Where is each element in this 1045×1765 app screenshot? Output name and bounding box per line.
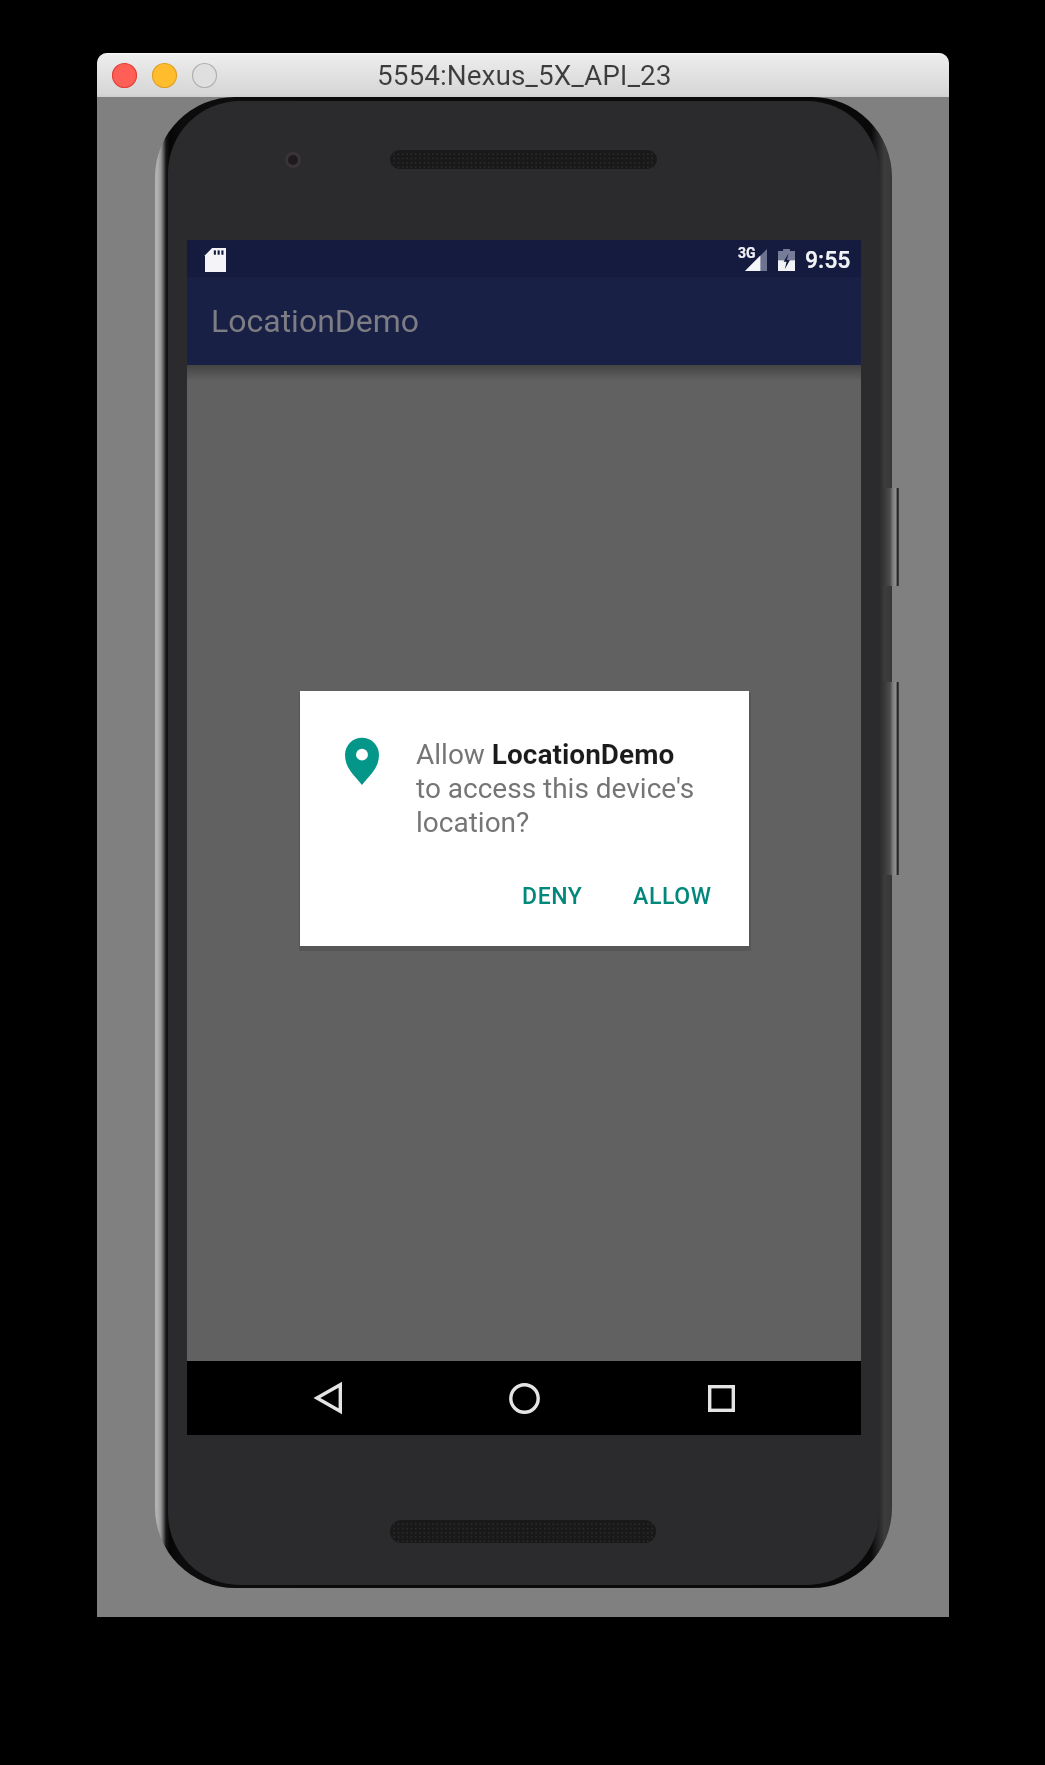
staticText: 3G: [738, 245, 756, 261]
button[interactable]: Back: [272, 1361, 384, 1435]
staticText: LocationDemo: [211, 302, 420, 340]
staticText: 9:55: [805, 247, 851, 274]
staticText: Allow LocationDemo to access this device…: [416, 738, 695, 839]
button[interactable]: Recent apps: [665, 1361, 777, 1435]
button[interactable]: ALLOW: [617, 865, 727, 927]
button[interactable]: DENY: [507, 865, 598, 927]
staticText: DENY: [522, 883, 583, 910]
staticText: 5554:Nexus_5X_API_23: [377, 59, 672, 92]
button[interactable]: Home: [468, 1361, 580, 1435]
staticText: ALLOW: [633, 883, 712, 910]
